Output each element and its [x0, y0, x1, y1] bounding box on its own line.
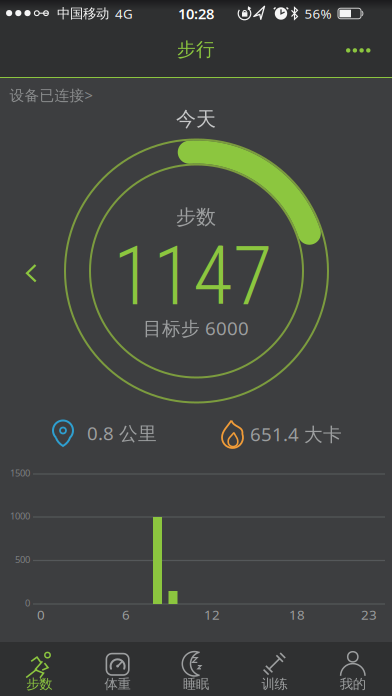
staticText: 0	[25, 597, 30, 609]
staticText: 1000	[10, 510, 30, 522]
staticText: 我的	[340, 676, 366, 692]
staticText: 4G	[115, 5, 133, 22]
staticText: 18	[289, 606, 305, 623]
staticText: 56%	[304, 5, 331, 22]
staticText: 今天	[176, 107, 216, 131]
staticText: 500	[15, 553, 30, 566]
staticText: 设备已连接>	[9, 85, 92, 105]
staticText: 睡眠	[183, 676, 209, 692]
staticText: 1147	[113, 229, 273, 324]
staticText: 体重	[105, 676, 131, 692]
staticText: 目标步 6000	[143, 316, 249, 340]
staticText: 0	[37, 606, 45, 623]
button[interactable]: Previous Day	[22, 264, 40, 282]
button[interactable]: 我的	[314, 642, 392, 696]
staticText: 1500	[10, 467, 30, 479]
staticText: 训练	[261, 676, 287, 692]
staticText: 步数	[176, 205, 216, 229]
button[interactable]: 步数	[0, 642, 78, 696]
button[interactable]: More	[346, 40, 371, 60]
button[interactable]: 睡眠	[157, 642, 235, 696]
staticText: 12	[204, 606, 220, 623]
button[interactable]: 体重	[78, 642, 157, 696]
staticText: 10:28	[178, 4, 214, 23]
staticText: 6	[122, 606, 130, 623]
staticText: 中国移动	[57, 5, 109, 22]
staticText: 步行	[177, 38, 215, 61]
staticText: 23	[361, 606, 377, 623]
staticText: 0.8 公里	[87, 421, 157, 445]
staticText: 651.4 大卡	[250, 422, 342, 446]
staticText: 步数	[26, 676, 52, 692]
button[interactable]: 训练	[235, 642, 314, 696]
button[interactable]: 设备已连接>	[9, 85, 92, 105]
